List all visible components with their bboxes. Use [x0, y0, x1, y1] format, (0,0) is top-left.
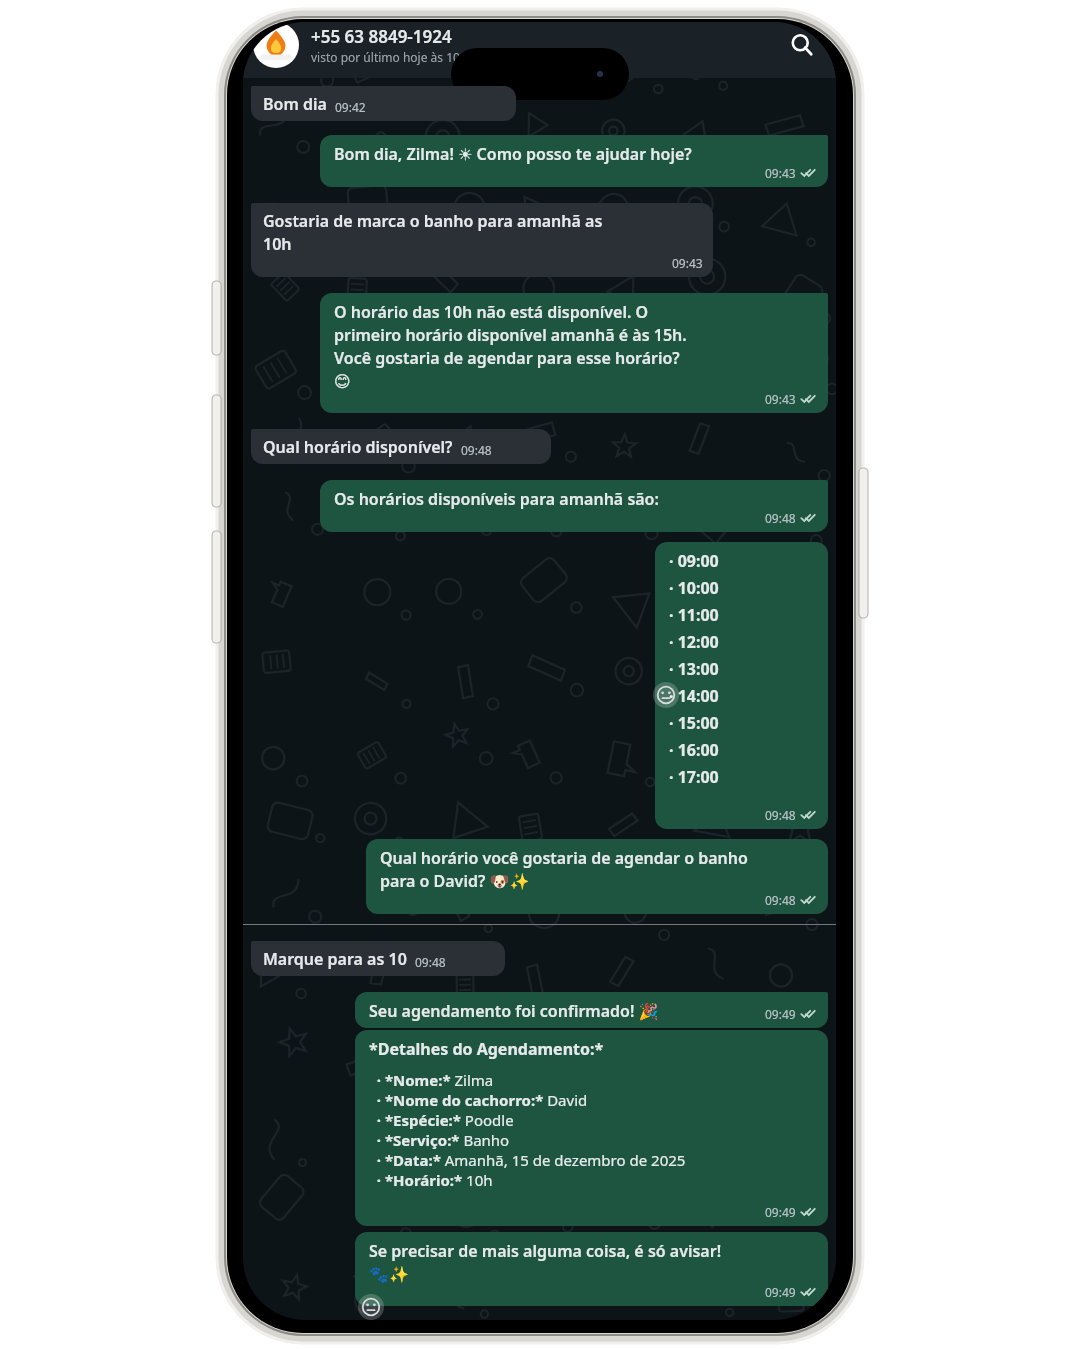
staticText: 09:48: [415, 954, 446, 970]
staticText: Gostaria de marca o banho para amanhã as…: [263, 210, 603, 255]
staticText: 09:49: [765, 1204, 796, 1220]
button[interactable]: Seu agendamento foi confirmado! 🎉: [355, 992, 828, 1028]
staticText: · 09:00: [669, 550, 719, 572]
staticText: Bom dia: [263, 93, 327, 115]
button[interactable]: Foto do perfil: [253, 22, 299, 68]
staticText: *Detalhes do Agendamento:*: [369, 1038, 604, 1060]
staticText: · *Data:* Amanhã, 15 de dezembro de 2025: [369, 1150, 686, 1170]
button[interactable]: Reagir com emoji: [653, 682, 679, 708]
staticText: · *Horário:* 10h: [369, 1170, 493, 1190]
staticText: 09:43: [672, 255, 703, 271]
staticText: 09:49: [765, 1006, 796, 1022]
button[interactable]: O horário das 10h não está disponível. O…: [320, 293, 828, 413]
staticText: Seu agendamento foi confirmado! 🎉: [369, 1000, 659, 1022]
staticText: Os horários disponíveis para amanhã são:: [334, 488, 659, 510]
staticText: · 17:00: [669, 766, 719, 788]
staticText: visto por último hoje às 10:56: [311, 49, 477, 65]
button[interactable]: Pesquisar: [782, 25, 822, 65]
staticText: · *Serviço:* Banho: [369, 1130, 510, 1150]
button[interactable]: · 09:00: [655, 542, 828, 829]
button[interactable]: Bom dia: [251, 86, 516, 121]
button[interactable]: Marque para as 10: [251, 941, 505, 976]
staticText: 09:48: [765, 892, 796, 908]
staticText: Bom dia, Zilma! ☀️ Como posso te ajudar …: [334, 143, 692, 165]
staticText: · 13:00: [669, 658, 719, 680]
staticText: Qual horário disponível?: [263, 436, 453, 458]
staticText: · *Nome do cachorro:* David: [369, 1090, 588, 1110]
staticText: · 10:00: [669, 577, 719, 599]
button[interactable]: Se precisar de mais alguma coisa, é só a…: [355, 1232, 828, 1306]
button[interactable]: Qual horário disponível?: [251, 429, 551, 464]
staticText: 09:43: [765, 391, 796, 407]
staticText: 09:49: [765, 1284, 796, 1300]
button[interactable]: Qual horário você gostaria de agendar o …: [366, 839, 828, 914]
button[interactable]: Os horários disponíveis para amanhã são:: [320, 480, 828, 532]
button[interactable]: Bom dia, Zilma! ☀️ Como posso te ajudar …: [320, 135, 828, 187]
staticText: 09:42: [335, 99, 366, 115]
staticText: · 16:00: [669, 739, 719, 761]
staticText: Qual horário você gostaria de agendar o …: [380, 847, 748, 892]
staticText: 09:48: [461, 442, 492, 458]
button[interactable]: *Detalhes do Agendamento:*: [355, 1030, 828, 1226]
staticText: · 14:00: [669, 685, 719, 707]
staticText: · 12:00: [669, 631, 719, 653]
staticText: · *Espécie:* Poodle: [369, 1110, 514, 1130]
staticText: O horário das 10h não está disponível. O…: [334, 301, 687, 391]
staticText: · 11:00: [669, 604, 719, 626]
staticText: · 15:00: [669, 712, 719, 734]
staticText: Marque para as 10: [263, 948, 407, 970]
staticText: Se precisar de mais alguma coisa, é só a…: [369, 1240, 722, 1284]
staticText: 09:48: [765, 510, 796, 526]
staticText: 09:43: [765, 165, 796, 181]
staticText: 09:48: [765, 807, 796, 823]
staticText: · *Nome:* Zilma: [369, 1070, 494, 1090]
button[interactable]: Gostaria de marca o banho para amanhã as…: [251, 203, 713, 277]
button[interactable]: Reagir com emoji: [358, 1294, 384, 1320]
staticText: +55 63 8849-1924: [311, 25, 452, 48]
